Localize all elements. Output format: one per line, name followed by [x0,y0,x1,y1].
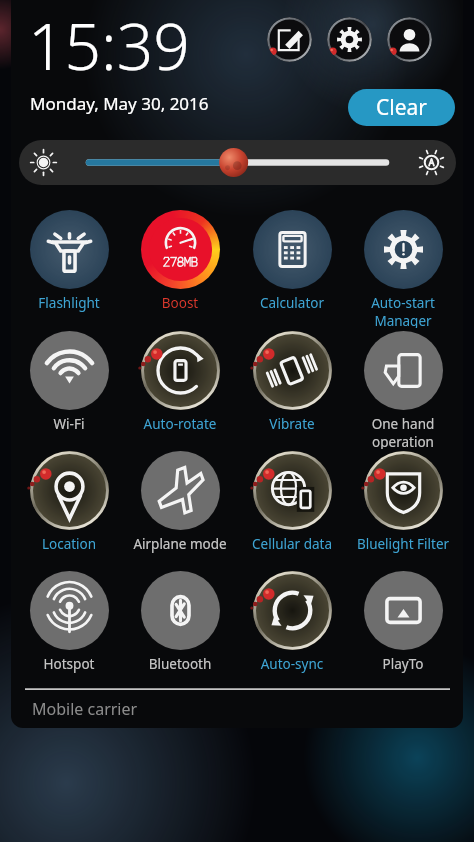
staticText: Airplane mode [128,535,232,553]
button[interactable]: Auto-start [351,210,455,328]
button[interactable]: Auto brightness [411,142,452,183]
staticText: Auto-rotate [128,415,232,433]
staticText: 15:39 [28,2,190,89]
staticText: Calculator [240,294,344,312]
button[interactable]: PlayTo [351,571,455,675]
button[interactable]: Airplane mode [128,451,232,555]
button[interactable]: Auto-sync [240,571,344,675]
button[interactable]: One hand [351,331,455,449]
button[interactable]: Cellular data [240,451,344,555]
button[interactable]: Bluetooth [128,571,232,675]
staticText: Mobile carrier [32,698,138,720]
button[interactable]: Settings [327,17,372,62]
button[interactable]: Auto-rotate [128,331,232,435]
button[interactable]: Clear [348,89,455,126]
button[interactable]: Boost [128,210,232,314]
button[interactable]: Vibrate [240,331,344,435]
staticText: Auto-start [351,294,455,312]
button[interactable]: Calculator [240,210,344,314]
staticText: Auto-sync [240,655,344,673]
staticText: Cellular data [240,535,344,553]
staticText: Flashlight [17,294,121,312]
staticText: operation [351,433,455,449]
button[interactable]: User profile [387,17,432,62]
button[interactable]: Wi-Fi [17,331,121,435]
button[interactable]: Flashlight [17,210,121,314]
staticText: Boost [128,294,232,312]
staticText: Bluelight Filter [351,535,455,553]
button[interactable]: Hotspot [17,571,121,675]
staticText: Vibrate [240,415,344,433]
staticText: Wi-Fi [17,415,121,433]
staticText: Location [17,535,121,553]
button[interactable]: Brightness low [23,142,64,183]
staticText: Monday, May 30, 2016 [30,92,209,115]
staticText: Hotspot [17,655,121,673]
staticText: One hand [351,415,455,433]
button[interactable]: Bluelight Filter [351,451,455,555]
button[interactable] [89,140,386,185]
staticText: Manager [351,312,455,328]
button[interactable]: Edit quick settings [267,17,312,62]
button[interactable]: Location [17,451,121,555]
staticText: PlayTo [351,655,455,673]
staticText: Bluetooth [128,655,232,673]
staticText: Clear [376,93,427,122]
